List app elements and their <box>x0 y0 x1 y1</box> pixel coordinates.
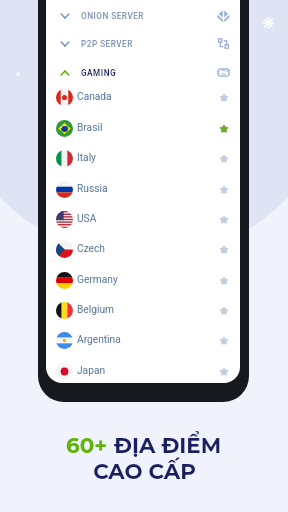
button[interactable]: Belgium <box>46 295 240 325</box>
other: Favorite Canada <box>218 91 230 103</box>
staticText: GAMING <box>81 68 117 78</box>
button[interactable]: P2P SERVER <box>46 29 240 58</box>
staticText: USA <box>77 213 97 225</box>
button[interactable]: Italy <box>46 143 240 173</box>
button[interactable]: ONION SERVER <box>46 1 240 30</box>
staticText: Brasil <box>77 122 103 134</box>
staticText: 60+ <box>66 432 114 458</box>
staticText: Russia <box>77 183 108 195</box>
staticText: Japan <box>77 365 106 377</box>
other: Favorite Brasil <box>218 122 230 134</box>
other: Favorite Italy <box>218 152 230 164</box>
other: Favorite Argentina <box>218 334 230 346</box>
other: Favorite Czech <box>218 243 230 255</box>
other: GAMING <box>217 66 230 79</box>
staticText: Italy <box>77 152 96 164</box>
staticText: Germany <box>77 274 118 286</box>
other: P2P SERVER <box>217 37 230 50</box>
button[interactable]: Canada <box>46 82 240 112</box>
other: Favorite Germany <box>218 274 230 286</box>
other: ONION SERVER <box>217 9 230 22</box>
other: Favorite USA <box>218 213 230 225</box>
other: Favorite Belgium <box>218 304 230 316</box>
staticText: CAO CẤP <box>93 458 196 484</box>
button[interactable]: Brasil <box>46 113 240 143</box>
staticText: P2P SERVER <box>81 39 133 49</box>
button[interactable]: USA <box>46 204 240 234</box>
button[interactable]: Japan <box>46 356 240 383</box>
button[interactable]: GAMING <box>46 58 240 87</box>
staticText: Canada <box>77 91 112 103</box>
button[interactable]: Czech <box>46 234 240 264</box>
button[interactable]: Germany <box>46 265 240 295</box>
staticText: ONION SERVER <box>81 11 144 21</box>
other: Favorite Japan <box>218 365 230 377</box>
other: Favorite Russia <box>218 183 230 195</box>
button[interactable]: Russia <box>46 174 240 204</box>
staticText: ĐỊA ĐIỂM <box>114 432 222 458</box>
staticText: Czech <box>77 243 105 255</box>
staticText: Argentina <box>77 334 121 346</box>
staticText: Belgium <box>77 304 114 316</box>
button[interactable]: Argentina <box>46 325 240 355</box>
